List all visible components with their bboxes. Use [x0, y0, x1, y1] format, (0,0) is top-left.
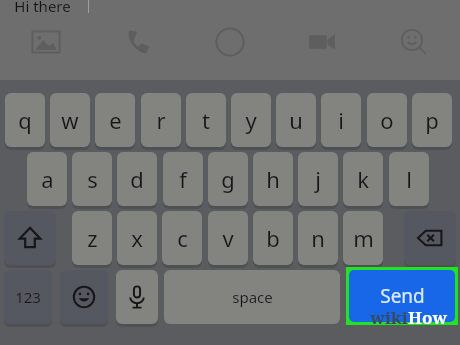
- staticText: q: [18, 105, 32, 135]
- staticText: c: [177, 223, 188, 253]
- staticText: n: [311, 223, 325, 253]
- button[interactable]: x: [117, 211, 157, 265]
- button[interactable]: g: [208, 152, 248, 206]
- button[interactable]: s: [72, 152, 112, 206]
- staticText: s: [87, 164, 98, 194]
- button[interactable]: Call: [111, 22, 167, 62]
- button[interactable]: Emoji: [60, 270, 108, 324]
- button[interactable]: Photos: [18, 22, 74, 62]
- staticText: g: [221, 164, 235, 194]
- button[interactable]: t: [186, 93, 226, 147]
- button[interactable]: q: [5, 93, 45, 147]
- staticText: space: [232, 287, 273, 307]
- button[interactable]: d: [117, 152, 157, 206]
- button[interactable]: z: [72, 211, 112, 265]
- button[interactable]: l: [389, 152, 429, 206]
- staticText: w: [61, 105, 79, 135]
- staticText: i: [338, 105, 344, 135]
- staticText: p: [425, 105, 439, 135]
- button[interactable]: e: [95, 93, 135, 147]
- button[interactable]: Video: [294, 22, 350, 62]
- staticText: o: [380, 105, 394, 135]
- button[interactable]: space: [164, 270, 340, 324]
- staticText: a: [41, 164, 54, 194]
- staticText: 123: [15, 287, 41, 307]
- button[interactable]: w: [50, 93, 90, 147]
- button[interactable]: Record: [202, 22, 258, 62]
- button[interactable]: b: [253, 211, 293, 265]
- staticText: m: [353, 223, 374, 253]
- staticText: h: [266, 164, 280, 194]
- staticText: k: [357, 164, 369, 194]
- staticText: l: [406, 164, 412, 194]
- button[interactable]: o: [367, 93, 407, 147]
- button[interactable]: m: [343, 211, 383, 265]
- button[interactable]: i: [321, 93, 361, 147]
- button[interactable]: n: [298, 211, 338, 265]
- staticText: e: [109, 105, 122, 135]
- staticText: wiki: [370, 306, 408, 329]
- staticText: r: [156, 105, 166, 135]
- staticText: y: [245, 105, 257, 135]
- button[interactable]: j: [298, 152, 338, 206]
- staticText: v: [222, 223, 234, 253]
- button[interactable]: h: [253, 152, 293, 206]
- staticText: t: [202, 105, 210, 135]
- button[interactable]: Send: [349, 270, 455, 322]
- staticText: How: [408, 306, 447, 329]
- button[interactable]: k: [343, 152, 383, 206]
- button[interactable]: f: [163, 152, 203, 206]
- staticText: f: [179, 164, 187, 194]
- button[interactable]: u: [276, 93, 316, 147]
- button[interactable]: v: [208, 211, 248, 265]
- staticText: b: [266, 223, 280, 253]
- button[interactable]: p: [412, 93, 452, 147]
- button[interactable]: a: [27, 152, 67, 206]
- button[interactable]: Stickers: [386, 22, 442, 62]
- staticText: u: [289, 105, 303, 135]
- button[interactable]: Numbers: [4, 270, 52, 324]
- staticText: j: [315, 164, 321, 194]
- staticText: Send: [380, 283, 425, 309]
- staticText: x: [131, 223, 143, 253]
- staticText: z: [87, 223, 98, 253]
- button[interactable]: Backspace: [404, 211, 456, 265]
- button[interactable]: Shift: [4, 211, 56, 265]
- button[interactable]: y: [231, 93, 271, 147]
- button[interactable]: c: [162, 211, 202, 265]
- button[interactable]: r: [141, 93, 181, 147]
- staticText: Hi there: [14, 0, 71, 16]
- button[interactable]: Dictation: [116, 270, 158, 324]
- staticText: d: [130, 164, 144, 194]
